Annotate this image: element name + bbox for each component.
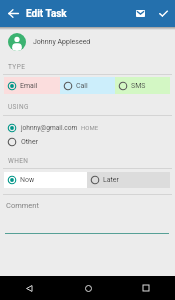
button[interactable]: Email — [4, 77, 60, 94]
staticText: Later — [103, 176, 119, 184]
staticText: Call — [76, 82, 88, 90]
button[interactable]: Call — [60, 77, 115, 94]
staticText: Other — [21, 138, 39, 146]
staticText: WHEN — [8, 157, 29, 165]
button[interactable]: Email — [128, 0, 152, 27]
staticText: johnny@gmail.com — [21, 124, 78, 132]
staticText: Email — [20, 82, 38, 90]
button[interactable]: johnny@gmail.com — [0, 121, 175, 134]
button[interactable]: Done — [152, 0, 175, 27]
staticText: Now — [20, 176, 35, 184]
button[interactable]: Home — [59, 276, 117, 300]
staticText: Edit Task — [26, 8, 67, 20]
staticText: HOME — [81, 124, 99, 131]
button[interactable]: Back — [0, 0, 26, 27]
button[interactable]: Recent apps — [117, 276, 175, 300]
button[interactable]: Now — [4, 172, 87, 188]
button[interactable]: Back — [0, 276, 59, 300]
button[interactable]: SMS — [115, 77, 170, 94]
staticText: USING — [8, 103, 29, 111]
button[interactable]: Johnny Appleseed — [0, 31, 175, 53]
staticText: TYPE — [8, 63, 26, 71]
button[interactable]: Other — [0, 135, 175, 148]
staticText: Johnny Appleseed — [33, 38, 91, 46]
button[interactable]: Later — [87, 172, 170, 188]
staticText: Comment — [6, 201, 39, 210]
staticText: SMS — [131, 82, 146, 90]
